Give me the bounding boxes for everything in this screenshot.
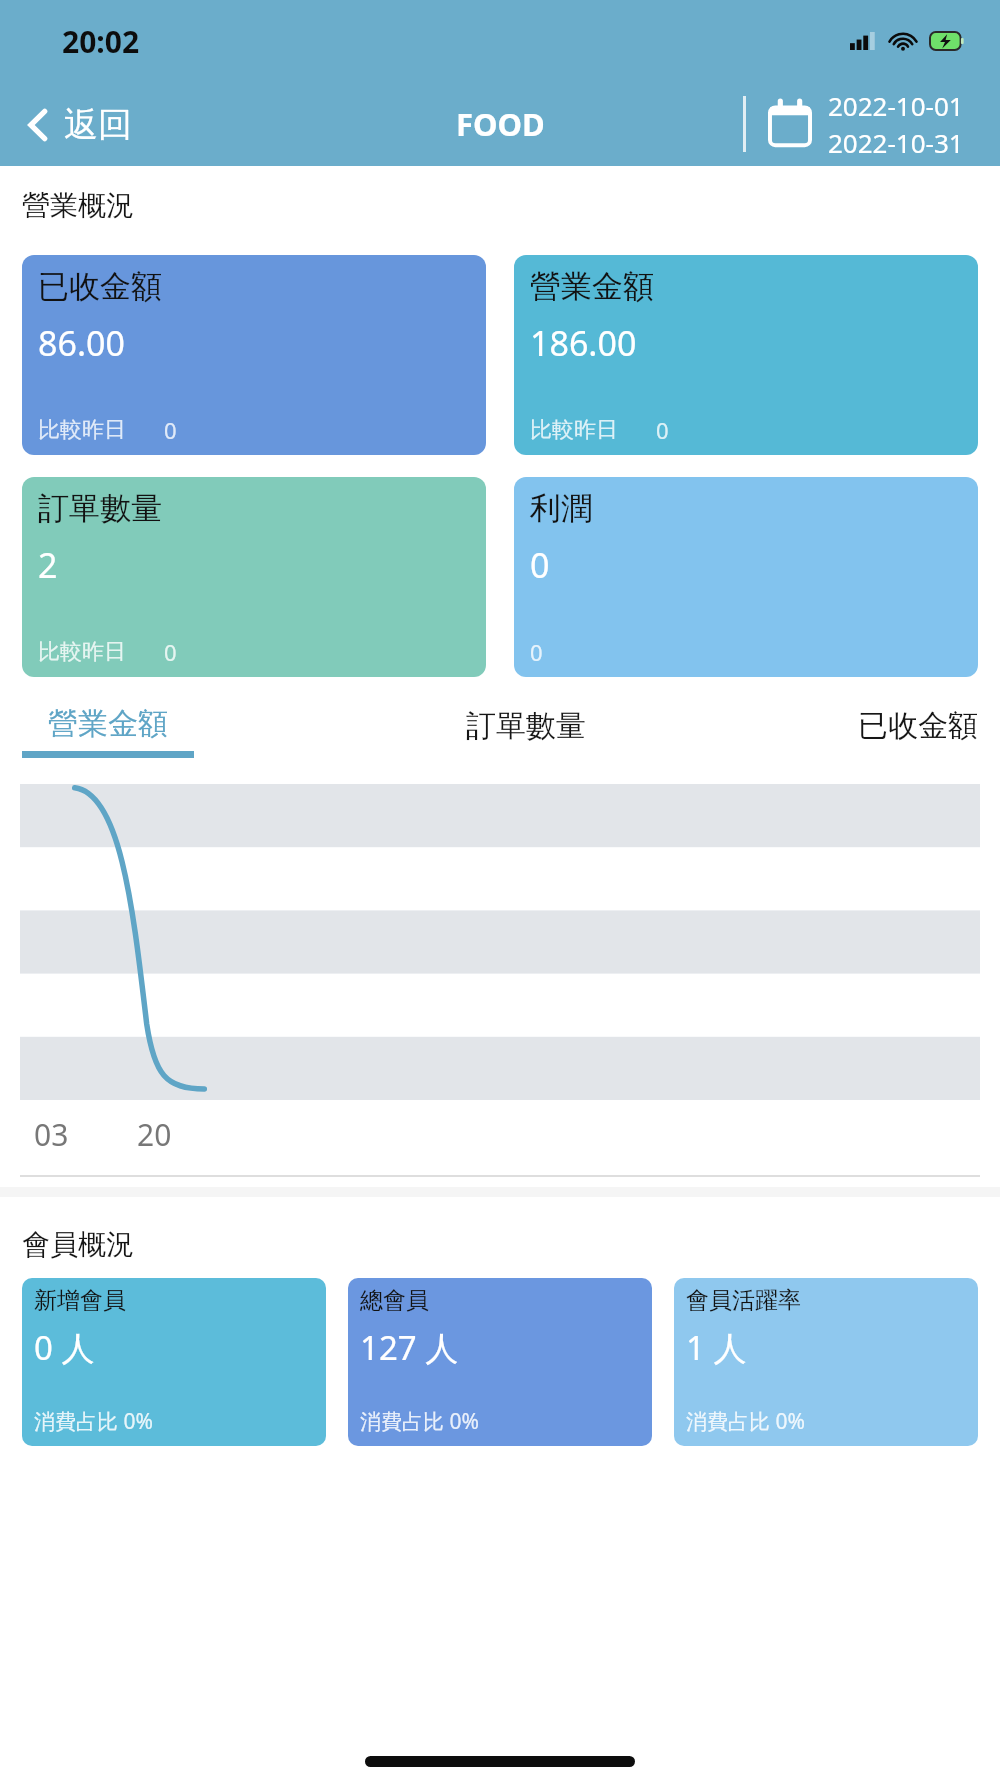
button[interactable]: 已收金額	[858, 705, 978, 745]
staticText: 20	[137, 1114, 172, 1155]
staticText: 比較昨日	[38, 416, 126, 444]
staticText: 比較昨日	[530, 416, 618, 444]
button[interactable]: 訂單數量	[466, 705, 586, 745]
button[interactable]: 返回	[26, 103, 142, 146]
staticText: 訂單數量	[466, 707, 586, 745]
staticText: 0	[656, 415, 669, 445]
staticText: 2022-10-01	[828, 88, 964, 123]
staticText: 0	[530, 542, 550, 588]
staticText: 0	[164, 415, 177, 445]
staticText: 已收金額	[858, 707, 978, 745]
staticText: 0	[530, 637, 543, 667]
button[interactable]: 已收金額	[22, 255, 486, 455]
staticText: 1 人	[686, 1325, 747, 1370]
button[interactable]: 訂單數量	[22, 477, 486, 677]
button[interactable]: 利潤	[514, 477, 978, 677]
button[interactable]: Select date range	[743, 88, 964, 160]
staticText: 總會員	[360, 1286, 429, 1315]
button[interactable]: 新增會員	[22, 1278, 326, 1446]
staticText: 86.00	[38, 320, 125, 366]
staticText: 訂單數量	[38, 489, 162, 528]
staticText: FOOD	[456, 103, 545, 145]
staticText: 已收金額	[38, 267, 162, 306]
staticText: 03	[34, 1114, 69, 1155]
staticText: 返回	[64, 103, 132, 146]
staticText: 比較昨日	[38, 638, 126, 666]
staticText: 消費占比 0%	[360, 1407, 479, 1436]
staticText: 2022-10-31	[828, 125, 964, 160]
button[interactable]: 營業金額	[22, 705, 194, 758]
staticText: 消費占比 0%	[686, 1407, 805, 1436]
staticText: 0 人	[34, 1325, 95, 1370]
staticText: 營業金額	[48, 705, 168, 743]
button[interactable]: 總會員	[348, 1278, 652, 1446]
staticText: 利潤	[530, 489, 592, 528]
staticText: 會員活躍率	[686, 1286, 801, 1315]
staticText: 消費占比 0%	[34, 1407, 153, 1436]
staticText: 127 人	[360, 1325, 459, 1370]
staticText: 營業概況	[22, 188, 134, 223]
staticText: 營業金額	[530, 267, 654, 306]
staticText: 0	[164, 637, 177, 667]
button[interactable]: 營業金額	[514, 255, 978, 455]
staticText: 2	[38, 542, 58, 588]
staticText: 186.00	[530, 320, 637, 366]
staticText: 會員概況	[22, 1227, 134, 1262]
staticText: 新增會員	[34, 1286, 126, 1315]
button[interactable]: 會員活躍率	[674, 1278, 978, 1446]
staticText: 20:02	[62, 21, 140, 62]
